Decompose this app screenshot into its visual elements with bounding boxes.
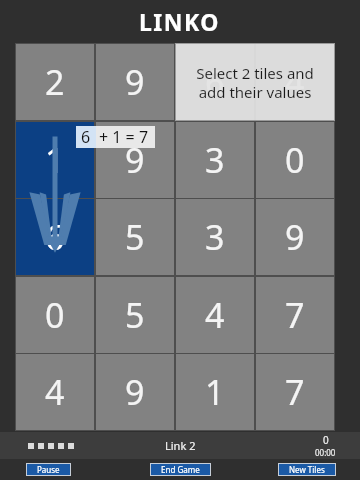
staticText: 9 xyxy=(125,59,145,105)
button[interactable]: 3 xyxy=(176,122,254,198)
button[interactable]: 1 xyxy=(176,354,254,430)
staticText: 1 xyxy=(205,369,225,415)
staticText: 0 xyxy=(323,433,329,447)
staticText: 4 xyxy=(45,369,65,415)
staticText: 9 xyxy=(125,369,145,415)
button[interactable]: 9 xyxy=(96,122,174,198)
staticText: Pause xyxy=(37,464,60,475)
button[interactable]: 4 xyxy=(16,354,94,430)
staticText: Link 2 xyxy=(165,438,196,453)
staticText: 0 xyxy=(285,137,305,183)
button[interactable]: 7 xyxy=(256,277,334,353)
button[interactable]: 5 xyxy=(96,199,174,275)
staticText: 5 xyxy=(125,214,145,260)
button[interactable]: 9 xyxy=(96,44,174,120)
staticText: 0 xyxy=(45,292,65,338)
button[interactable]: 0 xyxy=(16,277,94,353)
staticText: LINKO xyxy=(139,6,221,37)
staticText: 00:00 xyxy=(315,447,336,458)
staticText: 4 xyxy=(205,292,225,338)
button[interactable]: End Game xyxy=(161,463,200,476)
staticText: 6 xyxy=(81,126,91,148)
staticText: 4 xyxy=(285,59,305,105)
button[interactable]: 9 xyxy=(256,199,334,275)
staticText: 6 xyxy=(205,59,225,105)
staticText: 3 xyxy=(205,214,225,260)
button[interactable]: 4 xyxy=(176,277,254,353)
button[interactable]: 9 xyxy=(96,354,174,430)
button[interactable]: Pause xyxy=(37,463,60,476)
staticText: 3 xyxy=(205,137,225,183)
button[interactable]: 7 xyxy=(256,354,334,430)
button[interactable]: 0 xyxy=(256,122,334,198)
button[interactable]: New Tiles xyxy=(289,463,325,476)
button[interactable]: 2 xyxy=(16,44,94,120)
staticText: 9 xyxy=(125,137,145,183)
staticText: End Game xyxy=(161,464,200,475)
staticText: 9 xyxy=(285,214,305,260)
button[interactable]: 6 xyxy=(176,44,254,120)
staticText: 6 xyxy=(45,214,65,260)
staticText: Select 2 tiles and add their values xyxy=(181,63,329,102)
button[interactable]: 4 xyxy=(256,44,334,120)
staticText: 1 xyxy=(45,137,65,183)
button[interactable]: 6 xyxy=(16,199,94,275)
staticText: New Tiles xyxy=(289,464,325,475)
staticText: 2 xyxy=(45,59,65,105)
button[interactable]: 1 xyxy=(16,122,94,198)
button[interactable]: 3 xyxy=(176,199,254,275)
staticText: 7 xyxy=(285,292,305,338)
staticText: 5 xyxy=(125,292,145,338)
button[interactable]: 5 xyxy=(96,277,174,353)
staticText: 7 xyxy=(285,369,305,415)
staticText: + 1 = 7 xyxy=(99,126,149,148)
